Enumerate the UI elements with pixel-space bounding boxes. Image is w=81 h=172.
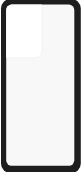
button[interactable]: Phone case product photo: [0, 0, 81, 172]
